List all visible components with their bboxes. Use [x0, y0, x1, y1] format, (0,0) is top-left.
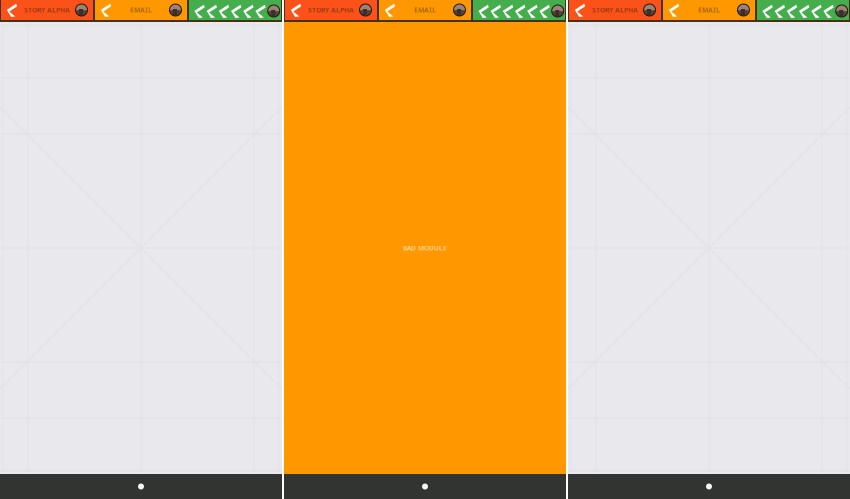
button[interactable]: Account — [643, 0, 662, 20]
button[interactable]: Account — [737, 0, 756, 20]
button[interactable]: Back — [94, 0, 118, 20]
button[interactable]: Account — [551, 0, 565, 22]
button[interactable]: Account — [453, 0, 472, 20]
button[interactable]: Back — [490, 0, 502, 22]
button[interactable]: Back — [193, 0, 206, 22]
button[interactable]: Back — [378, 0, 402, 20]
button[interactable]: Back — [526, 0, 538, 22]
button[interactable]: Back — [538, 0, 551, 22]
button[interactable]: Account — [359, 0, 378, 20]
staticText: EMAIL — [414, 6, 436, 14]
staticText: STORY ALPHA — [24, 6, 70, 14]
button[interactable]: Account — [267, 0, 281, 22]
button[interactable]: Back — [254, 0, 267, 22]
button[interactable]: Back — [761, 0, 774, 22]
button[interactable]: Back — [0, 0, 24, 20]
button[interactable]: Account — [169, 0, 188, 20]
staticText: STORY ALPHA — [592, 6, 638, 14]
button[interactable]: Back — [822, 0, 835, 22]
button[interactable]: Back — [206, 0, 218, 22]
staticText: STORY ALPHA — [308, 6, 354, 14]
button[interactable]: Back — [786, 0, 798, 22]
button[interactable]: Back — [810, 0, 822, 22]
button[interactable]: Account — [835, 0, 849, 22]
button[interactable]: Account — [75, 0, 94, 20]
button[interactable]: Back — [477, 0, 490, 22]
button[interactable]: Back — [662, 0, 686, 20]
button[interactable]: Back — [502, 0, 514, 22]
button[interactable]: Back — [568, 0, 592, 20]
staticText: EMAIL — [130, 6, 152, 14]
staticText: EMAIL — [698, 6, 720, 14]
button[interactable]: Back — [774, 0, 786, 22]
button[interactable]: Back — [284, 0, 308, 20]
button[interactable]: Back — [514, 0, 526, 22]
button[interactable]: Back — [242, 0, 254, 22]
staticText: BAD MODULE — [403, 244, 447, 252]
button[interactable]: Back — [218, 0, 230, 22]
button[interactable]: Back — [798, 0, 810, 22]
button[interactable]: Back — [230, 0, 242, 22]
